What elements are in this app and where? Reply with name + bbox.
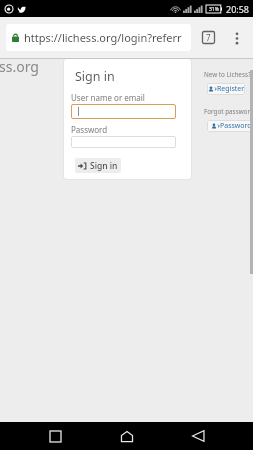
button[interactable]: Back bbox=[181, 422, 215, 450]
staticText: Password reset bbox=[220, 121, 253, 131]
staticText: Sign in bbox=[75, 68, 115, 85]
button[interactable]: Password reset bbox=[207, 120, 253, 132]
staticText: 7 bbox=[206, 32, 211, 43]
button[interactable]: Sign in bbox=[75, 158, 121, 173]
button[interactable]: More options bbox=[228, 29, 246, 47]
staticText: Forgot password? bbox=[204, 107, 253, 116]
button[interactable]: Register bbox=[207, 83, 245, 95]
staticText: Sign in bbox=[90, 160, 118, 172]
staticText: New to Lichess? bbox=[204, 70, 251, 79]
button[interactable] bbox=[71, 104, 176, 119]
staticText: 20:58 bbox=[226, 3, 250, 15]
button[interactable] bbox=[71, 136, 176, 148]
button[interactable]: Recent apps bbox=[38, 422, 72, 450]
staticText: Password bbox=[71, 124, 108, 135]
button[interactable]: https://lichess.org/login?referr bbox=[6, 24, 191, 51]
button[interactable]: Tabs bbox=[202, 31, 215, 44]
staticText: Register bbox=[217, 84, 245, 94]
staticText: https://lichess.org/login?referr bbox=[24, 30, 182, 45]
staticText: ss.org bbox=[0, 57, 39, 76]
staticText: User name or email bbox=[71, 92, 145, 103]
button[interactable]: Home bbox=[110, 422, 144, 450]
staticText: 31% bbox=[209, 6, 219, 13]
